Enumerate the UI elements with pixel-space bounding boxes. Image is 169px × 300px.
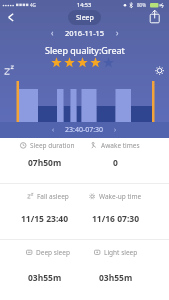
staticText: 80% [137,2,146,8]
staticText: 11/16 07:30 [92,213,140,225]
staticText: 23:40-07:30 [65,125,104,135]
staticText: 11/15 23:40 [21,213,69,225]
staticText: Wake-up time [99,192,142,201]
staticText: 03h55m [99,272,133,284]
staticText: 03h55m [28,272,62,284]
button[interactable]: ‹ [0,122,169,138]
button[interactable]: 03h55m [0,272,89,284]
staticText: Light sleep [104,248,138,257]
staticText: 07h50m [28,157,62,169]
staticText: Sleep [76,13,94,23]
button[interactable]: 11/16 07:30 [89,213,142,225]
button[interactable]: › [116,27,119,38]
staticText: 4G [30,2,36,8]
button[interactable]: ‹ [51,27,54,38]
button[interactable]: 07h50m [0,157,89,169]
staticText: 0 [113,157,118,169]
staticText: ‹ [51,27,54,38]
button[interactable]: 11/15 23:40 [0,213,89,225]
staticText: ‹ [52,125,55,135]
staticText: Fall asleep [37,192,69,201]
staticText: 14:53 [77,1,92,8]
staticText: 2016-11-15 [65,28,105,38]
staticText: › [114,125,117,135]
staticText: › [116,27,119,38]
staticText: Sleep quality:Great [45,44,125,56]
button[interactable] [4,10,20,26]
staticText: Awake times [101,141,140,150]
button[interactable]: Sleep [68,10,101,25]
staticText: Deep sleep [36,248,70,257]
button[interactable]: 03h55m [89,272,142,284]
button[interactable]: 0 [89,157,142,169]
staticText: Sleep duration [30,141,75,150]
button[interactable] [147,9,164,26]
